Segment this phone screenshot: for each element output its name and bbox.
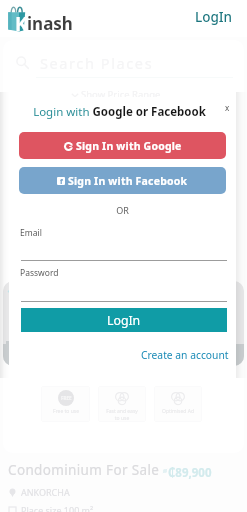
staticText: Password bbox=[20, 267, 59, 279]
staticText: Login with Google or Facebook bbox=[9, 104, 233, 120]
staticText: inash bbox=[27, 12, 73, 35]
staticText: Fast and easy to use bbox=[106, 408, 138, 422]
staticText: 1 bbox=[7, 284, 15, 302]
staticText: K bbox=[15, 11, 28, 37]
button[interactable]: Sign In with Google bbox=[19, 132, 226, 159]
staticText: OR bbox=[9, 204, 236, 216]
staticText: ANKORCHA bbox=[21, 486, 70, 498]
staticText: Show Price Range bbox=[81, 88, 161, 101]
staticText: LogIn bbox=[107, 312, 141, 329]
button[interactable]: LogIn bbox=[181, 4, 247, 30]
staticText: FREE bbox=[61, 395, 72, 401]
staticText: Search Places bbox=[40, 53, 154, 73]
button[interactable]: Close bbox=[219, 99, 235, 115]
staticText: Condominium For Sale bbox=[8, 461, 160, 478]
button[interactable]: LogIn bbox=[21, 308, 227, 332]
staticText: f bbox=[60, 177, 63, 185]
staticText: Place size 100 m² bbox=[21, 504, 94, 512]
staticText: Create an account bbox=[141, 348, 229, 362]
staticText: Free to use bbox=[53, 408, 79, 415]
button[interactable]: f bbox=[19, 167, 226, 194]
staticText: ₵89,900 bbox=[168, 465, 212, 481]
button[interactable]: Create an account bbox=[141, 348, 236, 362]
staticText: Optimised Ad bbox=[162, 408, 194, 415]
staticText: Sign In with Facebook bbox=[68, 174, 188, 188]
staticText: Sign In with Google bbox=[76, 139, 182, 153]
staticText: Email bbox=[20, 227, 42, 239]
staticText: x bbox=[225, 102, 230, 113]
staticText: LogIn bbox=[195, 8, 233, 26]
